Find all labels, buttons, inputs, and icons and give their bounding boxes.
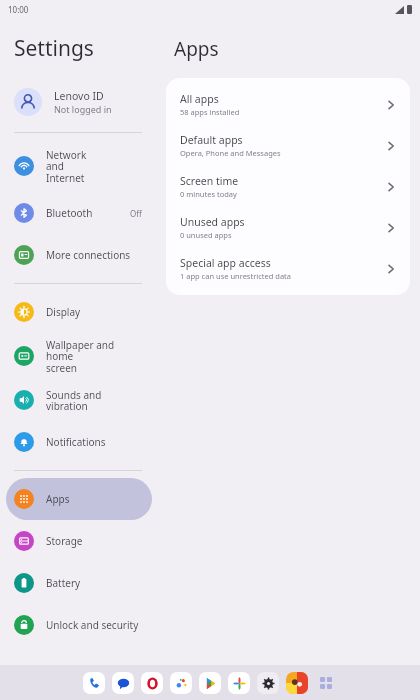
staticText: Storage (46, 534, 142, 548)
button[interactable]: Settings (257, 672, 279, 694)
staticText: 58 apps installed (180, 107, 240, 117)
staticText: Opera, Phone and Messages (180, 148, 281, 158)
staticText: Wallpaper and home screen (46, 338, 142, 375)
button[interactable]: All apps (166, 84, 410, 125)
staticText: Apps (46, 492, 142, 506)
button[interactable]: Screen time (166, 166, 410, 207)
staticText: Not logged in (54, 103, 112, 115)
staticText: Battery (46, 576, 142, 590)
button[interactable]: Unlock and security (6, 604, 152, 646)
button[interactable]: Phone (83, 672, 105, 694)
button[interactable]: Unused apps (166, 207, 410, 248)
button[interactable]: Bluetooth (6, 192, 152, 234)
button[interactable]: Assistant (170, 672, 192, 694)
staticText: 0 minutes today (180, 189, 237, 199)
button[interactable]: Opera (141, 672, 163, 694)
staticText: Sounds and vibration (46, 388, 142, 413)
staticText: Settings (14, 34, 94, 63)
staticText: Off (130, 208, 142, 219)
button[interactable]: Lenovo ID (0, 79, 158, 125)
button[interactable]: Sounds and vibration (6, 379, 152, 421)
staticText: Notifications (46, 435, 142, 449)
staticText: Unlock and security (46, 618, 142, 632)
button[interactable]: Notifications (6, 421, 152, 463)
staticText: Apps (174, 36, 219, 62)
staticText: All apps (180, 92, 219, 106)
button[interactable]: Messages (112, 672, 134, 694)
button[interactable]: Storage (6, 520, 152, 562)
button[interactable]: Play Store (199, 672, 221, 694)
staticText: Network and Internet (46, 148, 142, 185)
button[interactable]: All apps (315, 672, 337, 694)
staticText: Lenovo ID (54, 89, 104, 103)
button[interactable]: Wallpaper and home screen (6, 333, 152, 379)
staticText: Default apps (180, 133, 243, 147)
button[interactable]: Network and Internet (6, 140, 152, 192)
staticText: Screen time (180, 174, 239, 188)
button[interactable]: Special app access (166, 248, 410, 289)
button[interactable]: More connections (6, 234, 152, 276)
staticText: 1 app can use unrestricted data (180, 271, 292, 281)
staticText: Bluetooth (46, 206, 130, 220)
button[interactable]: Default apps (166, 125, 410, 166)
staticText: 10:00 (8, 4, 29, 15)
button[interactable]: Display (6, 291, 152, 333)
button[interactable]: Lenovo app (286, 672, 308, 694)
staticText: Special app access (180, 256, 271, 270)
button[interactable]: Apps (6, 478, 152, 520)
button[interactable]: Photos (228, 672, 250, 694)
staticText: 0 unused apps (180, 230, 232, 240)
button[interactable]: Battery (6, 562, 152, 604)
staticText: Unused apps (180, 215, 245, 229)
staticText: More connections (46, 248, 142, 262)
staticText: Display (46, 305, 142, 319)
